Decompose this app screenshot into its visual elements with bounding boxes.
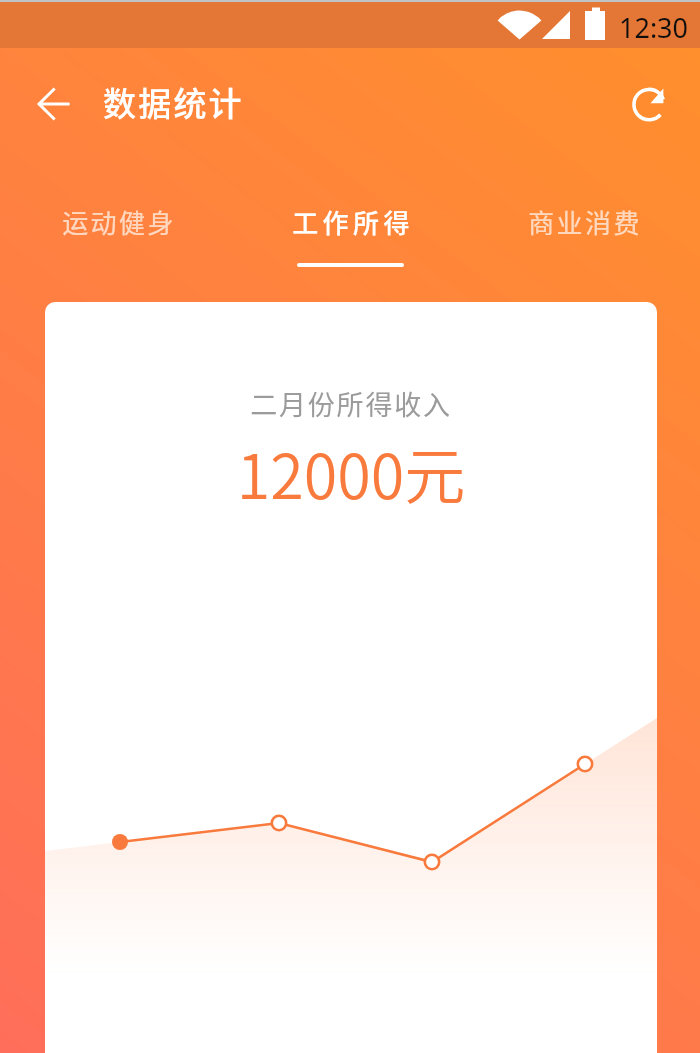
- button[interactable]: Back: [26, 76, 82, 132]
- staticText: 12000元: [45, 428, 657, 516]
- button[interactable]: 运动健身: [0, 203, 234, 263]
- staticText: 商业消费: [528, 203, 642, 241]
- staticText: 数据统计: [103, 78, 244, 126]
- staticText: 工作所得: [292, 203, 414, 241]
- button[interactable]: 商业消费: [467, 203, 700, 263]
- staticText: 12:30: [619, 9, 689, 46]
- staticText: 二月份所得收入: [45, 384, 657, 423]
- button[interactable]: 工作所得: [234, 203, 467, 267]
- staticText: 运动健身: [62, 203, 176, 241]
- button[interactable]: Refresh: [624, 76, 680, 132]
